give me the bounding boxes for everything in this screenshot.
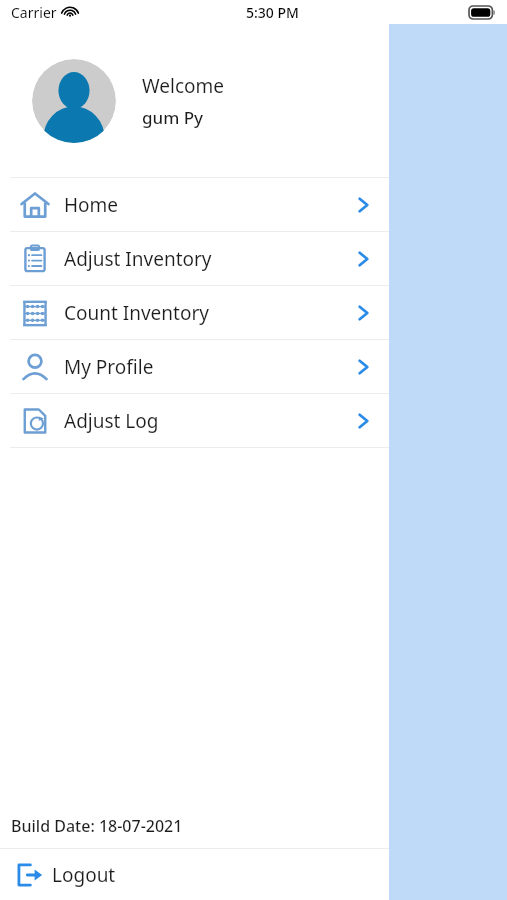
staticText: Home: [64, 192, 119, 218]
button[interactable]: Home: [0, 178, 389, 231]
button[interactable]: Adjust Inventory: [0, 232, 389, 285]
staticText: gum Py: [142, 106, 204, 129]
staticText: My Profile: [64, 354, 154, 380]
staticText: Build Date: 18-07-2021: [11, 815, 183, 837]
staticText: Welcome: [142, 73, 225, 99]
button[interactable]: Welcome: [0, 24, 389, 177]
button[interactable]: My Profile: [0, 340, 389, 393]
button[interactable]: Count Inventory: [0, 286, 389, 339]
staticText: Count Inventory: [64, 300, 209, 326]
staticText: Logout: [52, 862, 116, 888]
staticText: 5:30 PM: [246, 3, 299, 22]
button[interactable]: Logout: [0, 849, 389, 900]
staticText: Carrier: [11, 3, 57, 22]
button[interactable]: Adjust Log: [0, 394, 389, 447]
staticText: Adjust Log: [64, 408, 159, 434]
staticText: Adjust Inventory: [64, 246, 212, 272]
